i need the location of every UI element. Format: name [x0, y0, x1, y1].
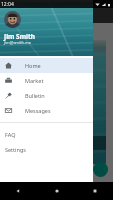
staticText: FAQ [5, 131, 16, 138]
staticText: jim@smith.me [4, 40, 32, 45]
other: Recents [92, 188, 98, 194]
button[interactable]: Bulletin [0, 88, 93, 103]
staticText: Messages [25, 107, 51, 114]
other: Home [54, 188, 60, 194]
staticText: Market [25, 77, 44, 84]
staticText: 12:04 [1, 1, 14, 8]
button[interactable]: Market [0, 73, 93, 88]
button[interactable]: Home [0, 58, 93, 73]
staticText: Settings [5, 146, 26, 153]
staticText: Jim Smith [4, 32, 36, 41]
other: Back [15, 188, 21, 194]
button[interactable]: Messages [0, 103, 93, 118]
staticText: Home [25, 62, 41, 69]
staticText: Bulletin [25, 92, 45, 99]
button[interactable]: Add [93, 162, 108, 177]
button[interactable]: FAQ [0, 127, 93, 142]
button[interactable]: Settings [0, 142, 93, 157]
